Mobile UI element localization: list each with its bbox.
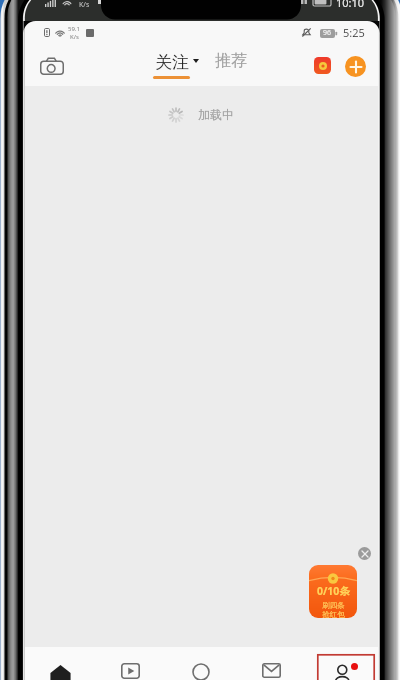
button[interactable]: Close	[358, 547, 371, 560]
button[interactable]: 推荐	[215, 51, 247, 79]
button[interactable]: 0/10条	[309, 565, 357, 618]
staticText: 10:10	[336, 0, 365, 10]
staticText: 96	[323, 28, 332, 38]
button[interactable]: Home	[25, 663, 95, 680]
staticText: 加载中	[198, 107, 234, 122]
staticText: K/s	[70, 33, 79, 41]
button[interactable]: Add post	[345, 56, 366, 77]
staticText: 刷四条	[322, 601, 345, 610]
staticText: 5:25	[343, 25, 365, 40]
button[interactable]: 关注	[148, 52, 199, 86]
staticText: 0/10条	[317, 584, 350, 598]
button[interactable]: Videos	[95, 663, 165, 680]
staticText: 推荐	[215, 51, 247, 71]
staticText: 抢红包	[322, 610, 345, 618]
button[interactable]: Camera	[34, 51, 70, 81]
staticText: K/s	[79, 0, 90, 10]
staticText: 关注	[155, 52, 189, 73]
button[interactable]: Profile	[317, 654, 375, 680]
button[interactable]: Messages	[236, 663, 307, 680]
staticText: 59.1	[68, 25, 80, 33]
button[interactable]: Moments	[165, 663, 236, 680]
button[interactable]: Red packet	[314, 57, 331, 74]
